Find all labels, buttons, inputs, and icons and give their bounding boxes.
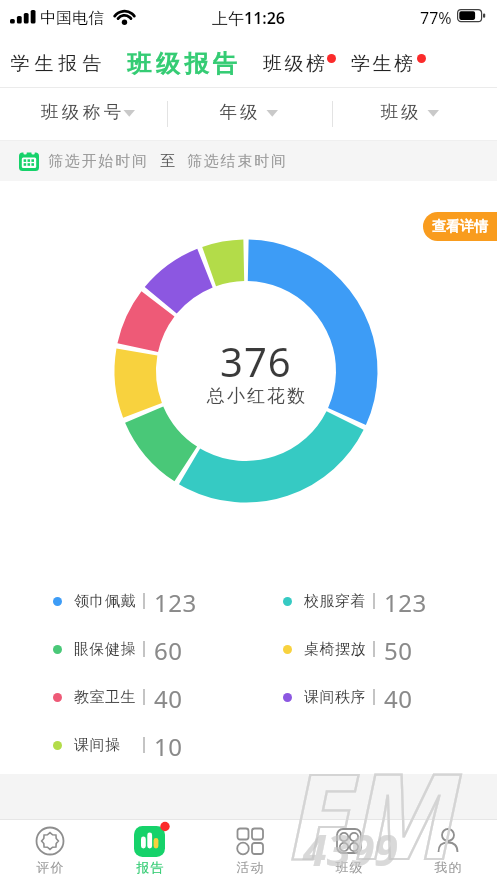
staticText: 筛选开始时间 [48,152,149,171]
button[interactable]: 课间操 [53,732,183,758]
staticText: 查看详情 [432,218,488,236]
staticText: 123 [384,586,427,612]
button[interactable]: 教室卫生 [53,684,183,710]
staticText: 40 [384,682,413,708]
staticText: 班级榜 [263,52,328,76]
button[interactable]: 学生榜 [351,40,416,87]
button[interactable]: 桌椅摆放 [283,636,413,662]
button[interactable]: 课间秩序 [283,684,413,710]
staticText: 眼保健操 [74,640,143,659]
staticText: 50 [384,634,413,660]
staticText: 376 [220,334,292,388]
staticText: 我的 [434,859,462,875]
staticText: 班级称号 [39,101,123,123]
staticText: 至 [160,152,175,171]
staticText: 上午11:26 [212,7,286,29]
staticText: 班级报告 [125,49,239,79]
staticText: 教室卫生 [74,688,143,707]
staticText: 总小红花数 [206,385,306,408]
button[interactable] [210,88,295,140]
staticText: 77% [420,7,452,29]
button[interactable]: 眼保健操 [53,636,183,662]
button[interactable]: 查看详情 [423,212,497,241]
staticText: 40 [154,682,183,708]
staticText: 活动 [236,859,264,875]
button[interactable]: 我的 [398,819,497,883]
staticText: 学生榜 [351,52,416,76]
staticText: 60 [154,634,183,660]
button[interactable]: 报告 [100,819,200,883]
staticText: 筛选结束时间 [187,152,288,171]
button[interactable]: 筛选开始时间 [0,141,497,181]
button[interactable]: 领巾佩戴 [53,588,197,614]
button[interactable]: 班级榜 [263,40,328,87]
staticText: 课间操 [74,736,143,755]
staticText: 领巾佩戴 [74,592,143,611]
button[interactable]: 活动 [200,819,299,883]
staticText: 学生报告 [8,52,104,76]
staticText: 班级 [379,101,420,123]
staticText: 123 [154,586,197,612]
staticText: 年级 [218,101,259,123]
staticText: 中国电信 [40,8,104,28]
staticText: 桌椅摆放 [304,640,373,659]
staticText: 班级 [335,859,363,875]
button[interactable] [370,88,455,140]
button[interactable]: 评价 [0,819,100,883]
staticText: 10 [154,730,183,756]
staticText: 评价 [36,859,64,875]
button[interactable] [30,88,145,140]
staticText: 校服穿着 [304,592,373,611]
staticText: FM [290,733,461,883]
staticText: 4399 [303,820,398,879]
button[interactable]: 校服穿着 [283,588,427,614]
button[interactable]: 班级报告 [125,40,239,87]
staticText: 课间秩序 [304,688,373,707]
button[interactable]: 班级 [299,819,398,883]
staticText: 报告 [136,859,164,875]
button[interactable]: 学生报告 [8,40,104,87]
